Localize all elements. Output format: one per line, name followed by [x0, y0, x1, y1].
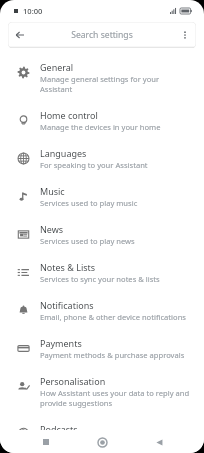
other: Languages: [10, 146, 36, 170]
staticText: Manage the devices in your home: [40, 122, 161, 132]
other: Home control: [10, 108, 36, 132]
button[interactable]: Home: [91, 431, 113, 453]
button[interactable]: Personalisation: [0, 367, 204, 415]
other: Music: [10, 184, 36, 208]
staticText: Payment methods & purchase approvals: [40, 350, 185, 360]
staticText: Search settings: [71, 29, 133, 41]
staticText: Personalisation: [40, 375, 106, 387]
staticText: Payments: [40, 337, 82, 349]
other: Personalisation: [10, 374, 36, 398]
staticText: Email, phone & other device notification…: [40, 312, 186, 322]
staticText: Manage general settings for your Assista…: [40, 74, 192, 94]
staticText: For speaking to your Assistant: [40, 160, 148, 170]
button[interactable]: Recents: [35, 431, 57, 453]
staticText: General: [40, 61, 74, 73]
other: Notes and Lists: [10, 260, 36, 284]
button[interactable]: Home control: [0, 101, 204, 139]
other: Payments: [10, 336, 36, 360]
staticText: Services to sync your notes & lists: [40, 274, 160, 284]
staticText: How Assistant uses your data to reply an…: [40, 388, 192, 408]
staticText: Services used to play music: [40, 198, 138, 208]
staticText: 10:00: [23, 6, 43, 16]
staticText: Music: [40, 185, 65, 197]
button[interactable]: Payments: [0, 329, 204, 367]
staticText: Podcasts: [40, 423, 78, 435]
button[interactable]: News: [0, 215, 204, 253]
staticText: Home control: [40, 109, 98, 121]
other: Podcasts: [10, 422, 36, 446]
staticText: Notes & Lists: [40, 261, 96, 273]
button[interactable]: Languages: [0, 139, 204, 177]
button[interactable]: Music: [0, 177, 204, 215]
button[interactable]: General: [0, 53, 204, 101]
other: Notifications: [10, 298, 36, 322]
button[interactable]: Back: [8, 23, 32, 47]
other: General: [10, 60, 36, 84]
staticText: Languages: [40, 147, 87, 159]
button[interactable]: Back: [8, 22, 196, 48]
staticText: News: [40, 223, 64, 235]
button[interactable]: Notifications: [0, 291, 204, 329]
button[interactable]: Notes and Lists: [0, 253, 204, 291]
staticText: Services used to play news: [40, 236, 135, 246]
staticText: Notifications: [40, 299, 94, 311]
other: News: [10, 222, 36, 246]
button[interactable]: Back: [148, 431, 170, 453]
button[interactable]: More options: [174, 24, 196, 46]
staticText: Services used to play podcasts: [40, 436, 149, 446]
button[interactable]: Podcasts: [0, 415, 204, 453]
